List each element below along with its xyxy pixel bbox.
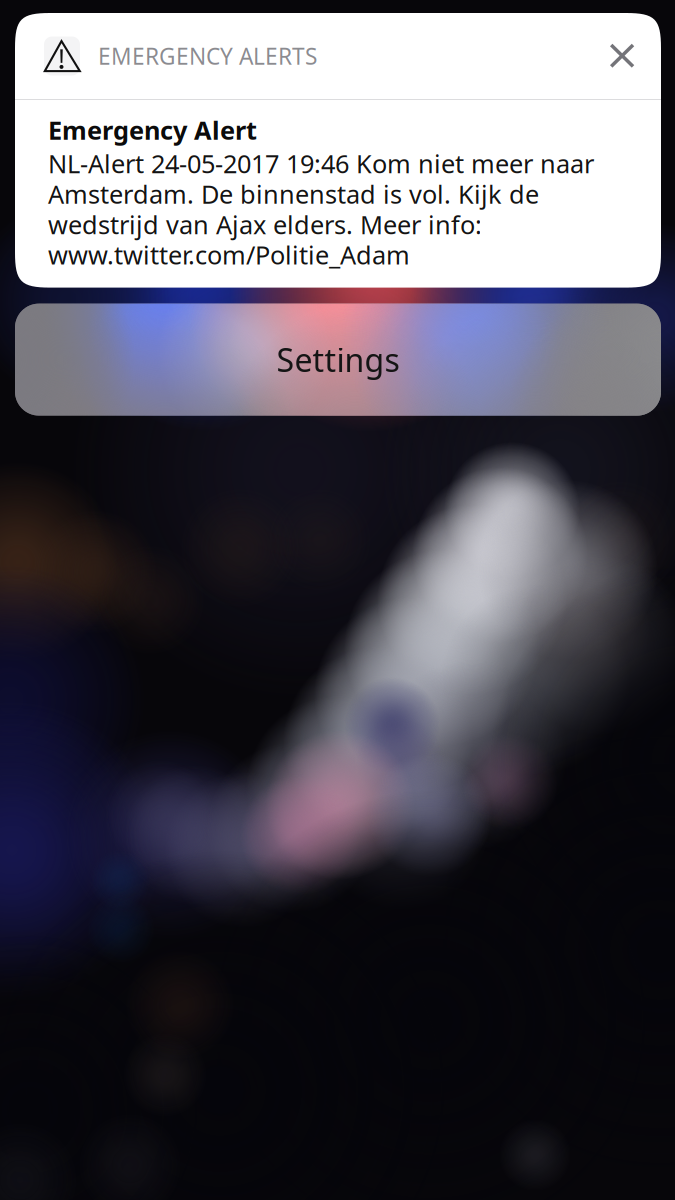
button[interactable]: Dismiss alert [597, 31, 647, 81]
staticText: NL-Alert 24-05-2017 19:46 Kom niet meer … [48, 147, 594, 272]
staticText: EMERGENCY ALERTS [98, 41, 317, 71]
staticText: Settings [276, 338, 399, 381]
button[interactable]: Settings [15, 304, 661, 416]
staticText: Emergency Alert [48, 113, 257, 147]
